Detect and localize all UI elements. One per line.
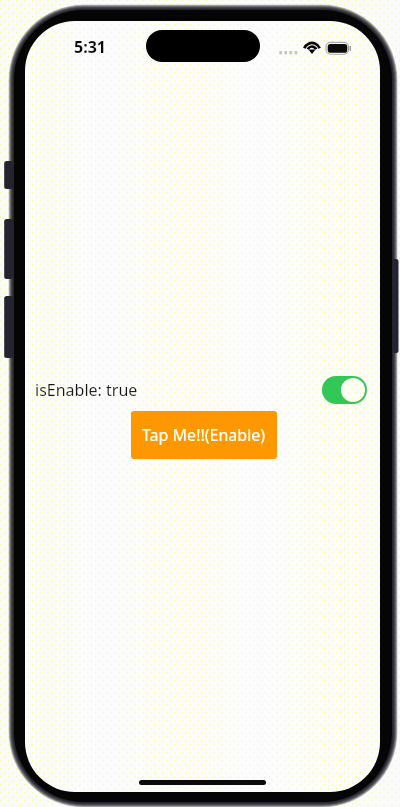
staticText: isEnable: true <box>35 379 138 401</box>
staticText: Tap Me!!(Enable) <box>142 424 266 446</box>
staticText: 5:31 <box>74 36 106 58</box>
button[interactable]: Tap Me!!(Enable) <box>131 411 277 459</box>
button[interactable]: isEnable switch, on <box>322 376 367 404</box>
